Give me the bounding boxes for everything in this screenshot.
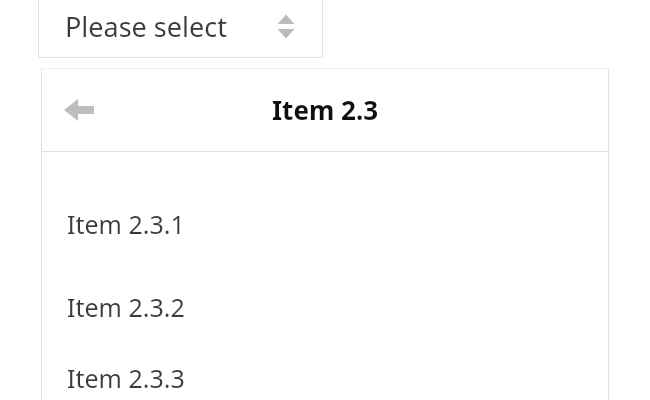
button[interactable]: Item 2.3.2 xyxy=(41,265,609,348)
staticText: Please select xyxy=(65,8,227,45)
staticText: Item 2.3 xyxy=(272,92,379,127)
button[interactable]: Item 2.3.1 xyxy=(41,152,609,265)
button[interactable]: Item 2.3.3 xyxy=(41,348,609,400)
staticText: Item 2.3.1 xyxy=(67,207,185,241)
staticText: Item 2.3.2 xyxy=(67,290,185,324)
staticText: Item 2.3.3 xyxy=(67,361,185,395)
button[interactable]: Back xyxy=(52,83,106,137)
button[interactable]: Please select xyxy=(38,0,323,58)
